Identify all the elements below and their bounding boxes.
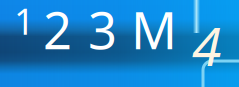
staticText: 1 bbox=[14, 0, 35, 45]
staticText: M bbox=[131, 0, 177, 63]
staticText: 4 bbox=[192, 10, 221, 81]
staticText: 2 bbox=[43, 0, 72, 63]
staticText: 3 bbox=[88, 0, 117, 63]
